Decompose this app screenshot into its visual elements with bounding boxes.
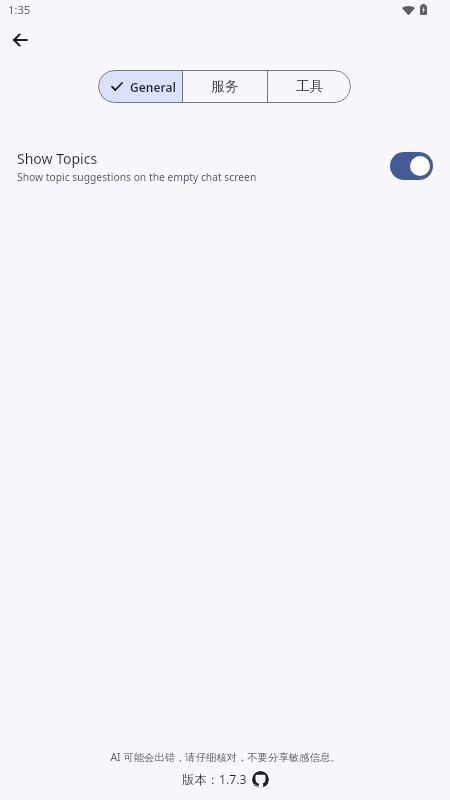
- staticText: Show Topics: [17, 149, 98, 168]
- button[interactable]: Show Topics toggle: [390, 152, 433, 180]
- button[interactable]: General: [98, 70, 182, 103]
- button[interactable]: Show Topics: [0, 145, 450, 187]
- button[interactable]: GitHub: [252, 771, 269, 788]
- staticText: 1:35: [8, 2, 31, 17]
- staticText: 工具: [296, 78, 324, 95]
- staticText: 服务: [211, 78, 239, 95]
- button[interactable]: 服务: [183, 70, 267, 103]
- staticText: 版本：1.7.3: [182, 771, 247, 788]
- staticText: Show topic suggestions on the empty chat…: [17, 170, 257, 184]
- button[interactable]: 工具: [268, 70, 351, 103]
- staticText: AI 可能会出错，请仔细核对，不要分享敏感信息。: [110, 750, 341, 764]
- staticText: General: [130, 79, 176, 95]
- button[interactable]: Back: [0, 16, 44, 64]
